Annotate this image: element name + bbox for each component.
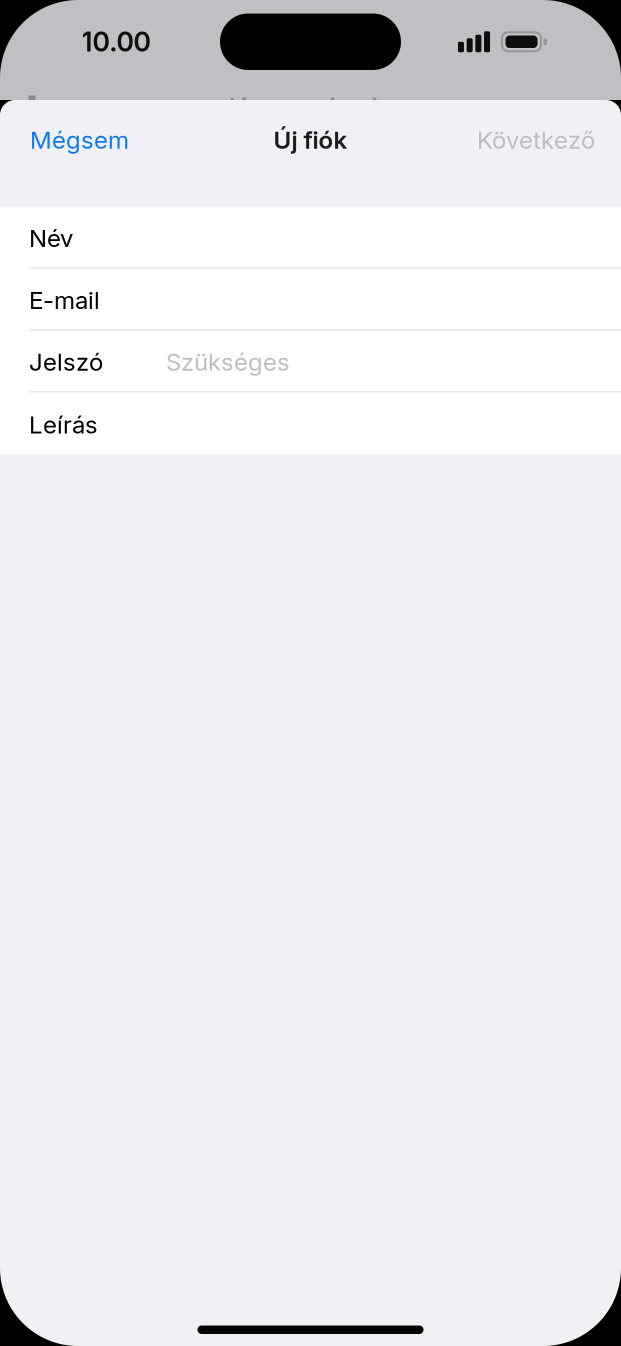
staticText: Jelszó: [29, 347, 103, 377]
staticText: E-mail: [29, 285, 100, 315]
staticText: Új fiók: [273, 125, 347, 155]
button[interactable]: E-mail: [0, 269, 621, 331]
staticText: Szükséges: [166, 347, 290, 377]
button[interactable]: Mégsem: [0, 100, 149, 180]
button[interactable]: Név: [0, 207, 621, 269]
staticText: Név: [29, 223, 73, 253]
staticText: Leírás: [29, 410, 98, 439]
staticText: Mégsem: [30, 125, 129, 155]
button[interactable]: Jelszó: [0, 331, 621, 393]
button[interactable]: Leírás: [0, 393, 621, 455]
staticText: Következő: [477, 125, 595, 155]
staticText: 10.00: [81, 26, 150, 58]
button[interactable]: Következő: [457, 100, 621, 180]
